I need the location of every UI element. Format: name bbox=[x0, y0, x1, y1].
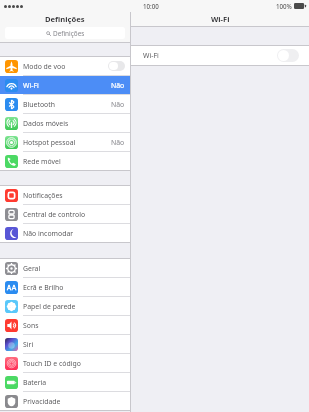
staticText: Touch ID e código bbox=[23, 359, 81, 368]
staticText: Wi-Fi bbox=[23, 81, 39, 90]
button[interactable]: Bluetooth bbox=[0, 95, 130, 113]
staticText: 10:00 bbox=[143, 2, 159, 10]
button[interactable]: Papel de parede bbox=[0, 297, 130, 315]
button[interactable]: Wi-Fi bbox=[0, 76, 130, 94]
button[interactable]: Privacidade bbox=[0, 392, 130, 410]
button[interactable]: Hotspot pessoal bbox=[0, 133, 130, 151]
staticText: Sons bbox=[23, 321, 39, 330]
button[interactable]: Search settings bbox=[5, 27, 125, 39]
button[interactable]: Touch ID e código bbox=[0, 354, 130, 372]
staticText: Geral bbox=[23, 264, 41, 273]
staticText: Rede móvel bbox=[23, 157, 61, 166]
button[interactable]: Central de controlo bbox=[0, 205, 130, 223]
button[interactable]: Siri bbox=[0, 335, 130, 353]
staticText: Privacidade bbox=[23, 397, 61, 406]
staticText: Dados móveis bbox=[23, 119, 69, 128]
staticText: Hotspot pessoal bbox=[23, 138, 76, 147]
staticText: Siri bbox=[23, 340, 34, 349]
button[interactable]: Notificações bbox=[0, 186, 130, 204]
staticText: Definições bbox=[45, 14, 85, 24]
staticText: Notificações bbox=[23, 191, 63, 200]
button[interactable]: Modo de voo bbox=[0, 57, 130, 75]
staticText: Wi-Fi bbox=[211, 14, 230, 24]
button[interactable]: Rede móvel bbox=[0, 152, 130, 170]
staticText: Não bbox=[111, 81, 125, 90]
staticText: Definições bbox=[53, 29, 85, 38]
button[interactable]: Wi-Fi toggle bbox=[277, 49, 299, 62]
staticText: Não bbox=[111, 100, 125, 109]
staticText: Wi-Fi bbox=[143, 51, 159, 60]
button[interactable]: Não incomodar bbox=[0, 224, 130, 242]
button[interactable]: Ecrã e Brilho bbox=[0, 278, 130, 296]
button[interactable]: Sons bbox=[0, 316, 130, 334]
staticText: Bluetooth bbox=[23, 100, 55, 109]
staticText: Ecrã e Brilho bbox=[23, 283, 64, 292]
staticText: Não bbox=[111, 138, 125, 147]
staticText: Modo de voo bbox=[23, 62, 66, 71]
button[interactable]: Wi-Fi bbox=[131, 46, 309, 65]
staticText: Central de controlo bbox=[23, 210, 86, 219]
button[interactable]: Airplane mode toggle bbox=[108, 61, 125, 71]
staticText: 100% bbox=[276, 2, 292, 10]
button[interactable]: Geral bbox=[0, 259, 130, 277]
staticText: Não incomodar bbox=[23, 229, 74, 238]
staticText: Papel de parede bbox=[23, 302, 76, 311]
button[interactable]: Bateria bbox=[0, 373, 130, 391]
button[interactable]: Dados móveis bbox=[0, 114, 130, 132]
staticText: Bateria bbox=[23, 378, 47, 387]
